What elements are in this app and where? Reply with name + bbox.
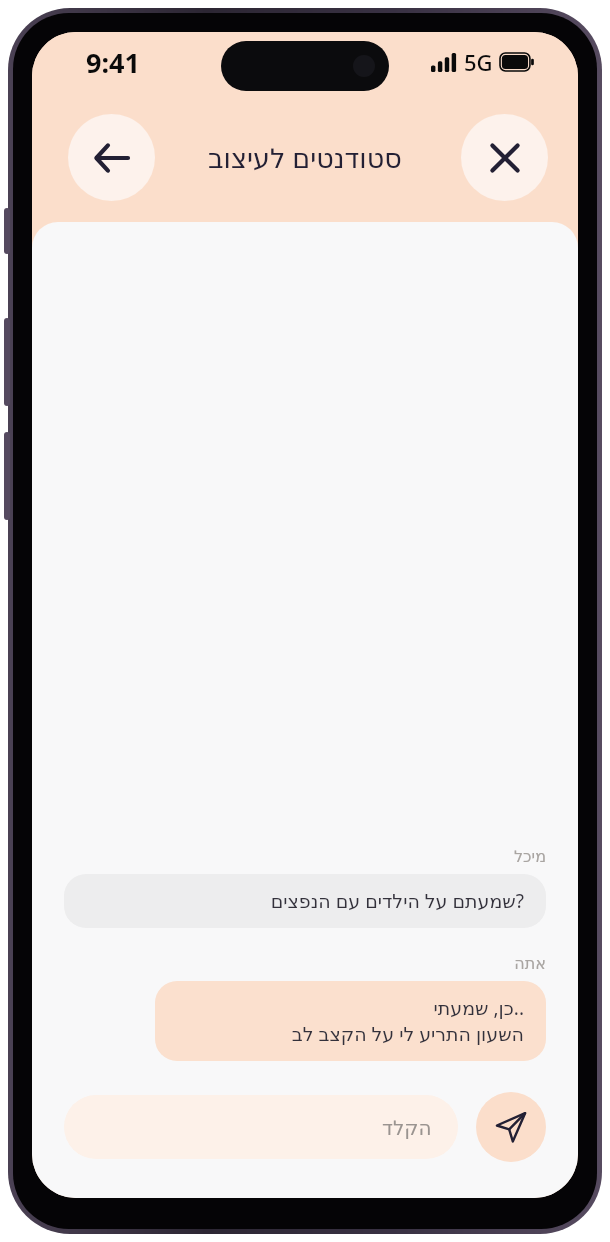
staticText: שמעתם על הילדים עם הנפצים? — [270, 888, 524, 914]
button[interactable]: Close — [461, 114, 548, 201]
staticText: השעון התריע לי על הקצב לב — [291, 1021, 524, 1047]
button[interactable]: Send — [476, 1092, 546, 1162]
staticText: מיכל — [64, 847, 546, 866]
staticText: אתה — [64, 954, 546, 973]
button[interactable]: Back — [68, 114, 155, 201]
staticText: הקלד — [382, 1116, 432, 1139]
button[interactable]: הקלד — [64, 1095, 458, 1159]
staticText: 5G — [464, 47, 493, 77]
button[interactable]: שמעתם על הילדים עם הנפצים? — [64, 874, 546, 928]
staticText: סטודנטים לעיצוב — [208, 139, 402, 176]
staticText: 9:41 — [86, 44, 140, 81]
staticText: כן, שמעתי.. — [433, 995, 524, 1021]
button[interactable]: כן, שמעתי.. — [155, 981, 546, 1061]
